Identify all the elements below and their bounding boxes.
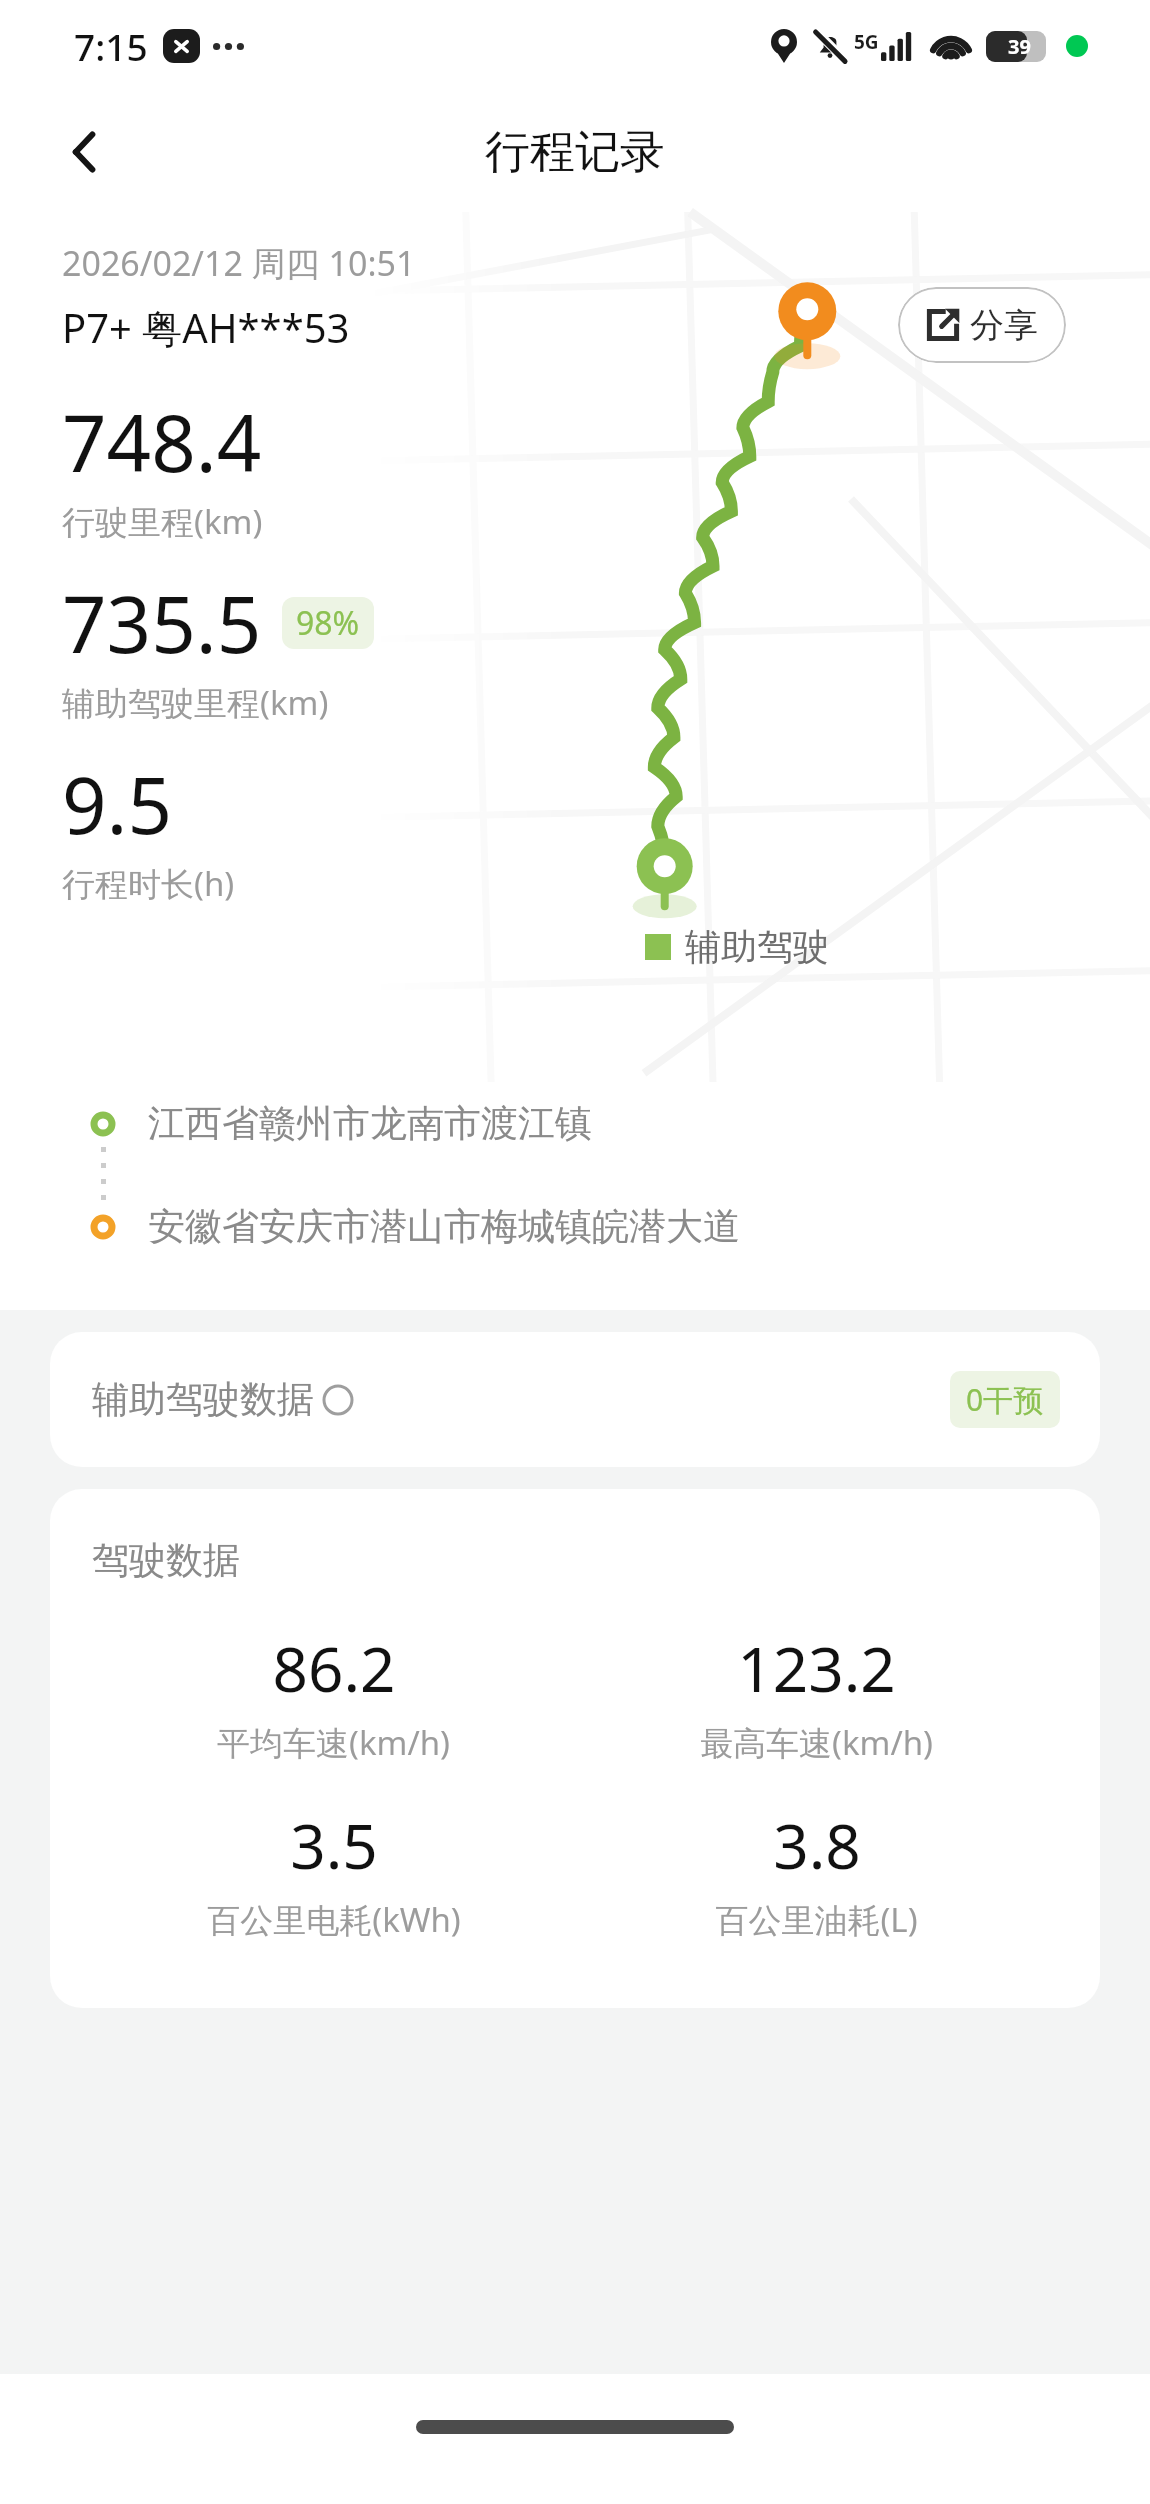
staticText: 7:15 [74, 21, 148, 71]
staticText: 辅助驾驶数据 [92, 1376, 314, 1423]
staticText: 行驶里程(km) [62, 499, 263, 544]
staticText: 0干预 [966, 1379, 1044, 1420]
staticText: 86.2 [272, 1626, 396, 1710]
staticText: 123.2 [737, 1626, 896, 1710]
staticText: 行程记录 [485, 124, 665, 181]
staticText: 5G [854, 29, 879, 55]
staticText: 39 [1008, 33, 1031, 60]
staticText: 2026/02/12 周四 10:51 [62, 240, 416, 286]
staticText: 分享 [970, 304, 1038, 347]
staticText: 98% [296, 601, 360, 645]
button[interactable]: Back [30, 97, 140, 207]
staticText: 最高车速(km/h) [700, 1720, 933, 1765]
button[interactable]: 分享 [898, 287, 1066, 363]
staticText: 735.5 [62, 570, 262, 676]
staticText: 安徽省安庆市潜山市梅城镇皖潜大道 [148, 1203, 740, 1250]
staticText: 驾驶数据 [92, 1537, 240, 1584]
staticText: P7+ 粤AH***53 [62, 300, 350, 355]
staticText: 百公里电耗(kWh) [207, 1897, 461, 1942]
staticText: 江西省赣州市龙南市渡江镇 [148, 1100, 592, 1147]
staticText: 748.4 [62, 389, 262, 495]
staticText: 辅助驾驶里程(km) [62, 680, 329, 725]
staticText: 百公里油耗(L) [715, 1897, 918, 1942]
staticText: 3.5 [290, 1803, 378, 1887]
staticText: 9.5 [62, 751, 173, 857]
staticText: 辅助驾驶 [685, 924, 829, 969]
button[interactable]: 辅助驾驶数据 [50, 1332, 1100, 1467]
staticText: 3.8 [773, 1803, 861, 1887]
staticText: 平均车速(km/h) [217, 1720, 450, 1765]
staticText: 行程时长(h) [62, 861, 235, 906]
